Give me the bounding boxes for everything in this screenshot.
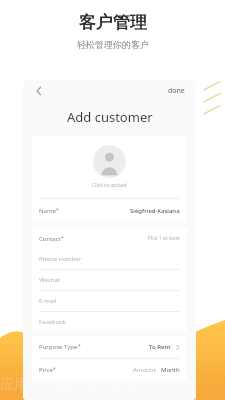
staticText: Amount — [133, 366, 156, 374]
staticText: * — [78, 343, 81, 350]
button[interactable]: Purpose Type — [32, 336, 187, 358]
staticText: Click to upload — [92, 182, 127, 189]
staticText: 客户管理 — [79, 12, 147, 33]
staticText: Siegfried·Kaslana — [130, 207, 180, 215]
staticText: Name — [39, 207, 56, 215]
staticText: * — [56, 207, 59, 214]
staticText: Pick 1 at least — [148, 235, 180, 242]
button[interactable]: Price — [32, 359, 187, 381]
button[interactable]: Facebook — [32, 312, 187, 331]
staticText: done — [168, 86, 185, 96]
staticText: Price — [39, 366, 53, 374]
staticText: Phone number — [39, 255, 82, 263]
button[interactable]: E-mail — [32, 291, 187, 311]
staticText: Contact — [39, 235, 61, 243]
button[interactable]: Phone number — [32, 249, 187, 269]
button[interactable]: Name — [32, 199, 187, 223]
staticText: * — [61, 235, 64, 242]
button[interactable]: Wechat — [32, 270, 187, 290]
staticText: Add customer — [67, 108, 153, 126]
button[interactable]: Back — [32, 84, 46, 98]
staticText: Purpose Type — [39, 343, 78, 351]
staticText: 应用 · HUACHUANGZS.C — [0, 374, 155, 393]
staticText: 轻松管理你的客户 — [77, 39, 149, 50]
staticText: Wechat — [39, 276, 60, 284]
staticText: * — [53, 366, 56, 373]
staticText: E-mail — [39, 297, 57, 305]
staticText: To Rent — [149, 343, 171, 351]
button[interactable]: done — [166, 84, 187, 98]
staticText: Facebook — [39, 318, 66, 326]
staticText: Month — [161, 366, 180, 374]
button[interactable]: Upload photo — [93, 145, 126, 178]
